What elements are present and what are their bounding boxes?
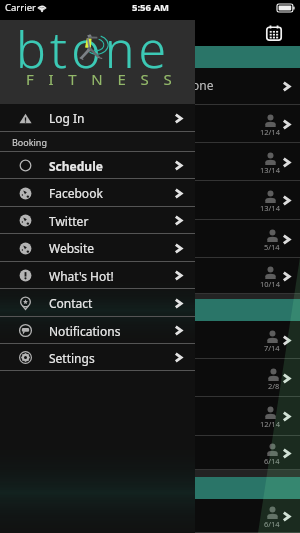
staticText: 2/8 [268, 381, 280, 391]
button[interactable]: 6/14 [0, 436, 300, 470]
button[interactable]: 13/14 [0, 143, 300, 181]
button[interactable]: Log In [0, 104, 195, 132]
staticText: 6/14 [264, 519, 280, 529]
button[interactable]: Calendar [266, 25, 282, 41]
staticText: What's Hot! [49, 268, 114, 284]
button[interactable]: 5/14 [0, 220, 300, 258]
staticText: 12/14 [260, 419, 280, 429]
staticText: 6/14 [264, 456, 280, 466]
staticText: Carrier [5, 1, 36, 14]
staticText: Contact [49, 295, 93, 311]
staticText: Booking [12, 136, 47, 148]
button[interactable]: one [0, 68, 300, 105]
button[interactable]: 12/14 [0, 397, 300, 436]
staticText: Facebook [49, 185, 103, 201]
staticText: Twitter [49, 213, 89, 229]
staticText: 5:56 AM [132, 1, 169, 14]
staticText: F I T N E S S [26, 69, 174, 89]
staticText: 13/14 [260, 165, 280, 175]
button[interactable]: Twitter [0, 207, 195, 234]
staticText: Website [49, 240, 95, 256]
button[interactable]: What's Hot! [0, 262, 195, 289]
button[interactable] [0, 46, 300, 68]
staticText: one [192, 77, 214, 93]
button[interactable]: Contact [0, 289, 195, 317]
button[interactable]: Schedule [0, 152, 195, 179]
staticText: 5/14 [264, 242, 280, 252]
button[interactable]: Notifications [0, 317, 195, 344]
button[interactable]: 10/14 [0, 258, 300, 294]
staticText: 12/14 [260, 127, 280, 137]
button[interactable]: Settings [0, 344, 195, 371]
staticText: 10/14 [260, 279, 280, 289]
staticText: btone [16, 15, 171, 83]
button[interactable]: 6/14 [0, 499, 300, 533]
staticText: Schedule [49, 158, 103, 174]
button[interactable]: 7/14 [0, 321, 300, 359]
button[interactable]: 12/14 [0, 105, 300, 143]
staticText: Notifications [49, 323, 121, 339]
button[interactable]: 13/14 [0, 181, 300, 220]
staticText: Log In [49, 110, 85, 126]
staticText: Settings [49, 350, 95, 366]
button[interactable]: Website [0, 234, 195, 262]
staticText: 13/14 [260, 203, 280, 213]
button[interactable]: Facebook [0, 179, 195, 207]
button[interactable] [0, 299, 300, 321]
button[interactable]: 2/8 [0, 359, 300, 397]
staticText: 7/14 [264, 343, 280, 353]
button[interactable] [0, 477, 300, 499]
